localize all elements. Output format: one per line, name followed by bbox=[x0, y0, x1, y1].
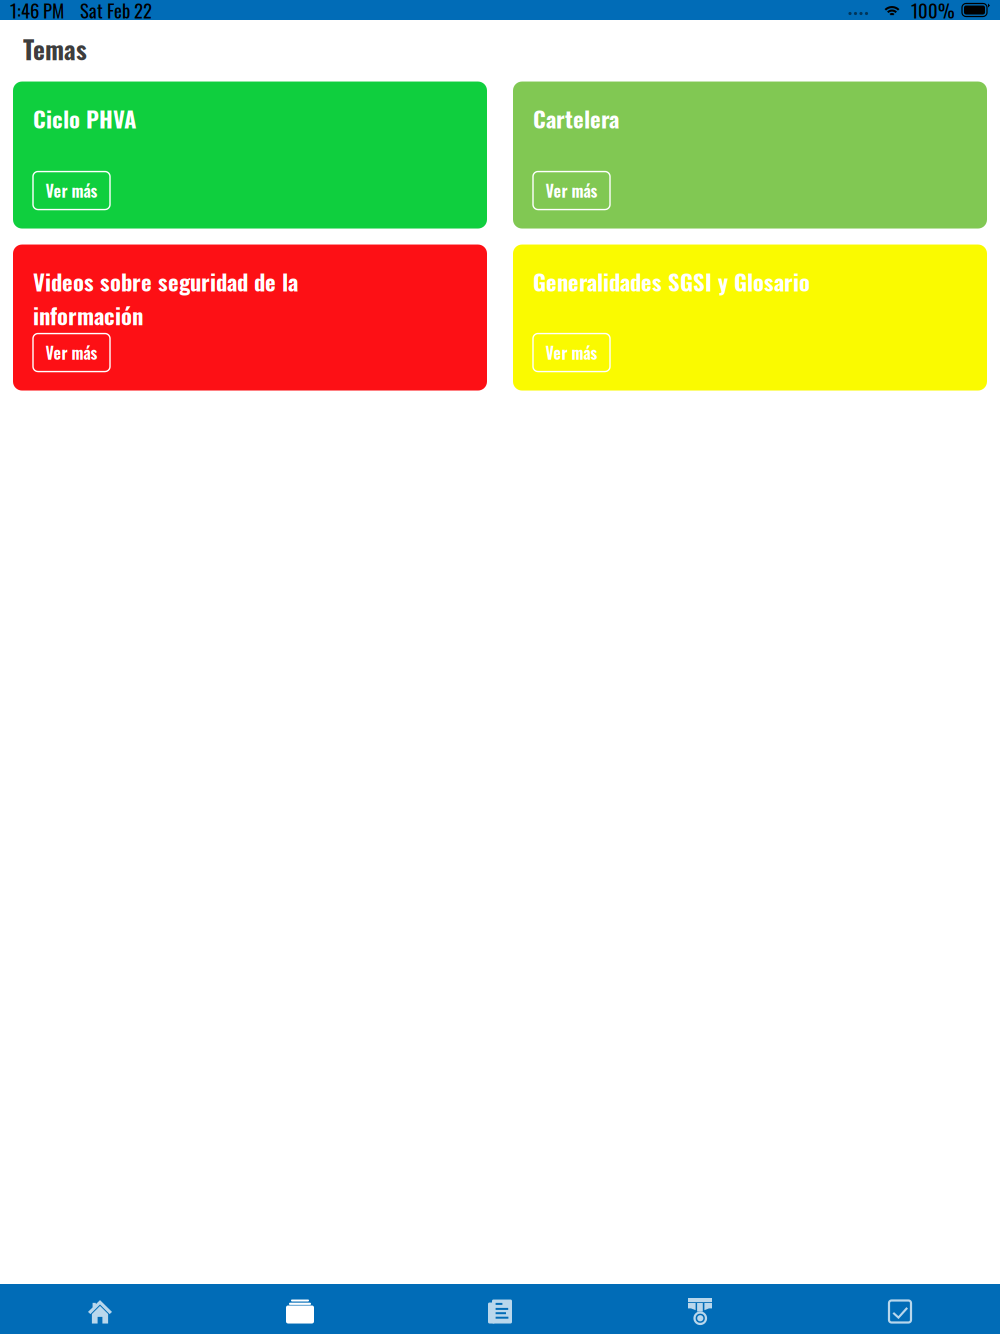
button[interactable]: Videos sobre seguridad de la información bbox=[13, 244, 487, 390]
staticText: Videos sobre seguridad de la información bbox=[33, 264, 298, 332]
staticText: Cartelera bbox=[533, 101, 619, 135]
staticText: Generalidades SGSI y Glosario bbox=[533, 264, 810, 298]
button[interactable]: Ciclo PHVA bbox=[13, 81, 487, 228]
staticText: Ver más bbox=[45, 341, 97, 364]
button[interactable]: Tareas bbox=[800, 1289, 1000, 1334]
button[interactable]: Ver más bbox=[33, 171, 110, 209]
staticText: Ver más bbox=[545, 179, 597, 202]
staticText: Ver más bbox=[545, 341, 597, 364]
button[interactable]: Ver más bbox=[533, 333, 610, 371]
button[interactable]: Ver más bbox=[533, 171, 610, 209]
staticText: 1:46 PM bbox=[10, 0, 64, 24]
staticText: Temas bbox=[23, 30, 87, 67]
staticText: Ver más bbox=[45, 179, 97, 202]
button[interactable]: Noticias bbox=[400, 1289, 600, 1334]
staticText: 100% bbox=[911, 0, 955, 24]
button[interactable]: Inicio bbox=[0, 1289, 200, 1334]
staticText: Sat Feb 22 bbox=[80, 0, 152, 24]
button[interactable]: Temas bbox=[200, 1289, 400, 1334]
button[interactable]: Generalidades SGSI y Glosario bbox=[513, 244, 987, 390]
button[interactable]: Ver más bbox=[33, 333, 110, 371]
button[interactable]: Logros bbox=[600, 1289, 800, 1334]
button[interactable]: Cartelera bbox=[513, 81, 987, 228]
staticText: Ciclo PHVA bbox=[33, 101, 136, 135]
